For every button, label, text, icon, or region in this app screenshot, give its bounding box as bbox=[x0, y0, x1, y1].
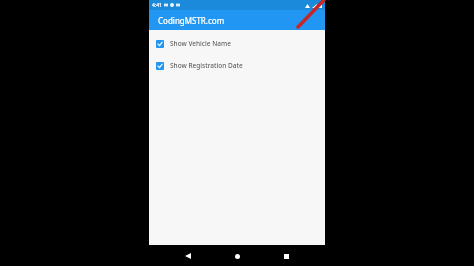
staticText: 4:41 bbox=[152, 2, 162, 9]
staticText: CodingMSTR.com bbox=[158, 15, 225, 26]
button[interactable]: Recent apps bbox=[276, 246, 296, 266]
button[interactable]: Show Registration Date bbox=[149, 59, 325, 72]
button[interactable]: Back bbox=[178, 246, 198, 266]
button[interactable]: Show Vehicle Name bbox=[149, 37, 325, 50]
button[interactable]: Home bbox=[227, 246, 247, 266]
staticText: Show Vehicle Name bbox=[170, 39, 231, 48]
staticText: Show Registration Date bbox=[170, 61, 243, 70]
